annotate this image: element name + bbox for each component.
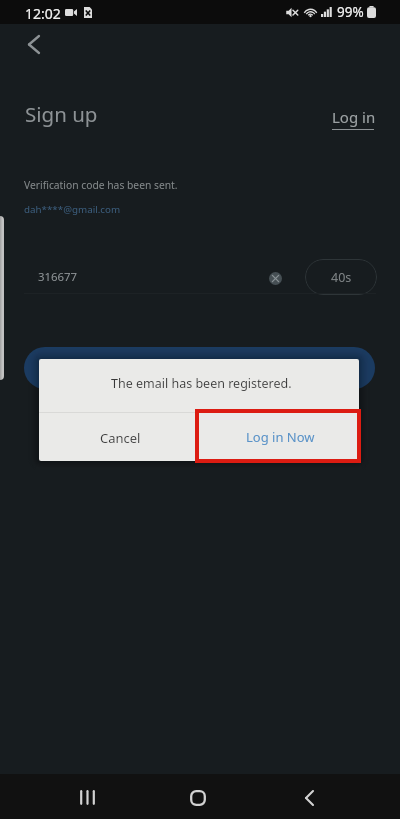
staticText: 40s [331,269,352,286]
button[interactable] [24,347,375,389]
staticText: Verification code has been sent. [24,178,178,192]
button[interactable]: 40s [305,259,377,295]
staticText: The email has been registered. [111,375,292,392]
button[interactable]: Recent apps [63,775,111,819]
button[interactable]: Back [285,775,333,819]
button[interactable]: Log in [326,104,380,134]
button[interactable]: Log in Now [199,413,359,461]
staticText: 99% [337,3,364,21]
button[interactable]: Clear [262,265,288,291]
staticText: dah****@gmail.com [24,203,121,216]
staticText: Log in [332,107,376,127]
button[interactable]: Cancel [39,413,198,461]
button[interactable]: Home [174,775,222,819]
staticText: Log in Now [246,428,315,446]
button[interactable]: Back [14,24,54,64]
staticText: Sign up [25,100,98,128]
staticText: 316677 [38,269,78,285]
staticText: 12:02 [25,4,61,23]
staticText: Cancel [100,429,141,447]
